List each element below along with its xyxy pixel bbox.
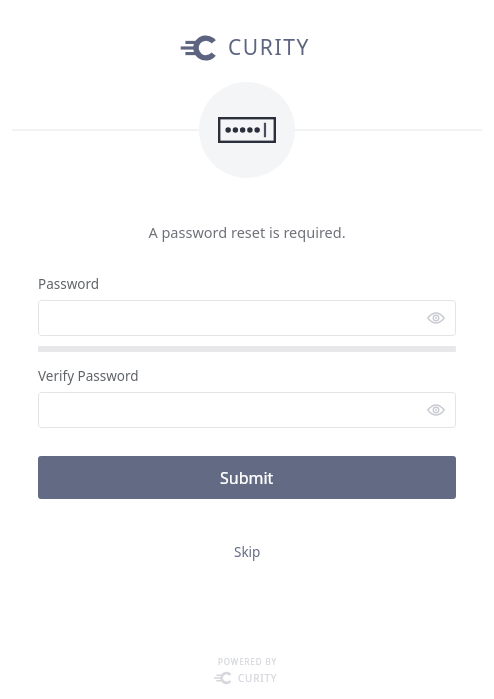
button[interactable]: Skip bbox=[224, 539, 271, 565]
staticText: Skip bbox=[234, 543, 261, 561]
staticText: POWERED BY bbox=[218, 656, 277, 667]
button[interactable]: Show verify password bbox=[38, 392, 456, 428]
staticText: A password reset is required. bbox=[148, 222, 346, 242]
button[interactable]: Show password bbox=[38, 300, 456, 336]
button[interactable]: Show password bbox=[424, 306, 448, 330]
staticText: Submit bbox=[220, 467, 274, 489]
staticText: Verify Password bbox=[38, 367, 139, 385]
button[interactable]: Show verify password bbox=[424, 398, 448, 422]
button[interactable]: Submit bbox=[38, 456, 456, 499]
staticText: CURITY bbox=[238, 671, 278, 685]
staticText: CURITY bbox=[228, 33, 310, 62]
staticText: Password bbox=[38, 275, 100, 293]
